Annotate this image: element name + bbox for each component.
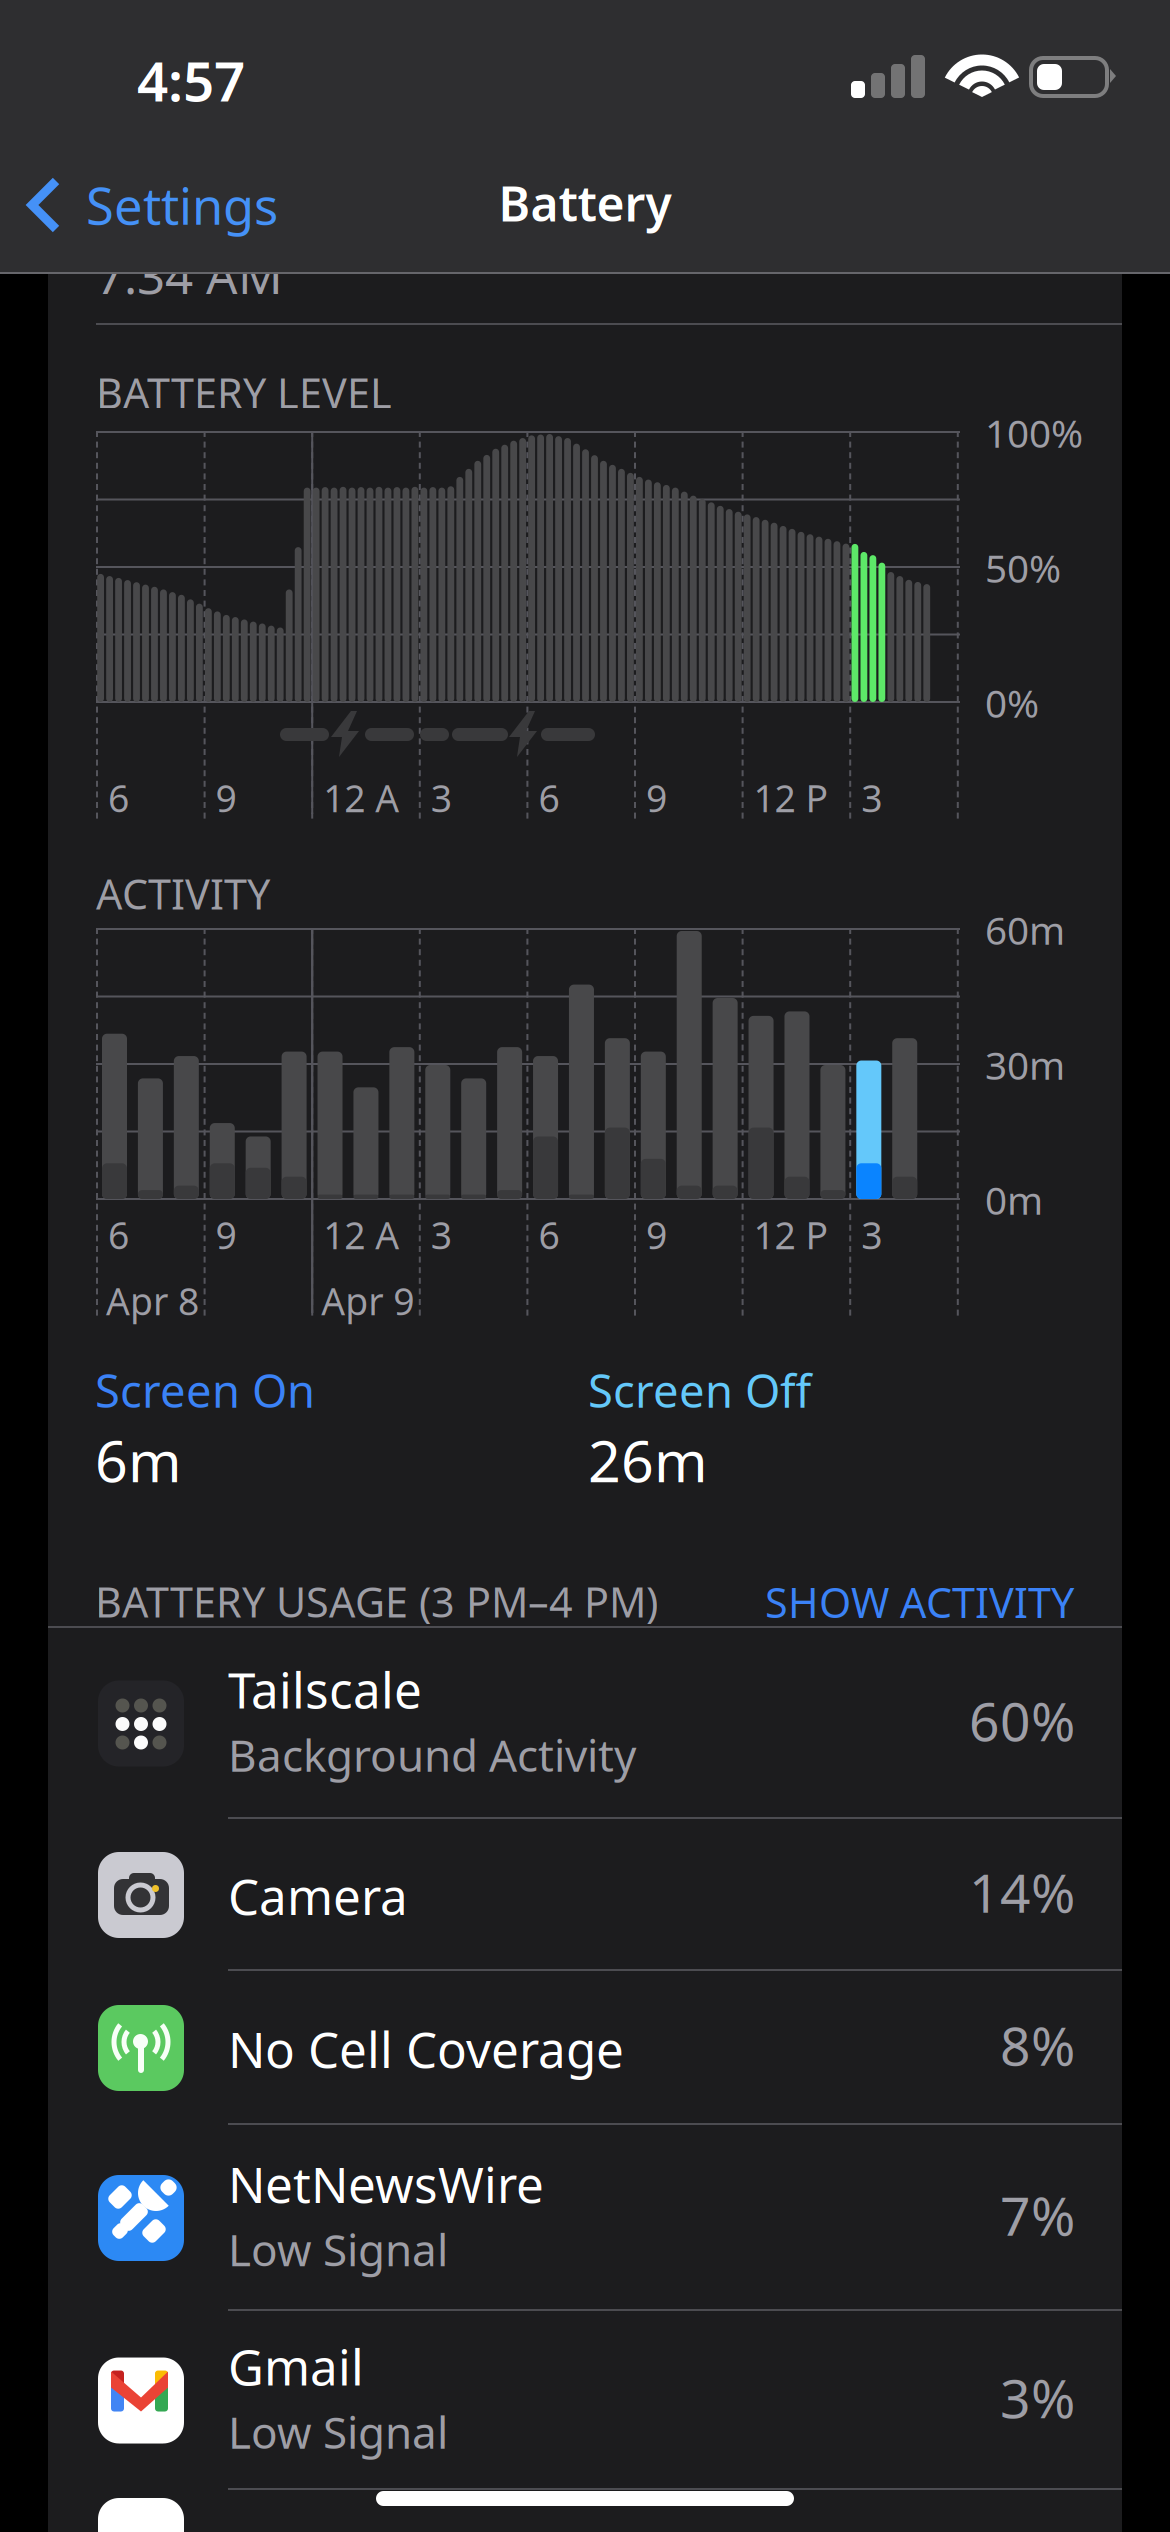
staticText: 8% xyxy=(1000,2010,1075,2080)
staticText: 9 xyxy=(646,773,667,823)
staticText: Screen On xyxy=(95,1360,315,1420)
staticText: Camera xyxy=(228,1863,408,1928)
button[interactable]: No Cell Coverage xyxy=(48,1971,1122,2125)
staticText: 3% xyxy=(1000,2362,1075,2433)
staticText: 9 xyxy=(646,1210,667,1260)
staticText: 3 xyxy=(431,1210,452,1260)
staticText: 9 xyxy=(216,773,237,823)
staticText: 7% xyxy=(1000,2180,1075,2250)
staticText: 0% xyxy=(985,677,1039,728)
button[interactable]: Settings xyxy=(12,158,352,250)
staticText: 12 P xyxy=(754,1210,829,1260)
button[interactable]: Tailscale xyxy=(48,1628,1122,1819)
staticText: 60m xyxy=(985,904,1065,955)
staticText: Apr 8 xyxy=(106,1276,199,1326)
button[interactable]: Screen On xyxy=(95,1360,575,1520)
staticText: ACTIVITY xyxy=(96,866,270,921)
staticText: SHOW ACTIVITY xyxy=(765,1575,1074,1629)
staticText: 4:57 xyxy=(137,44,245,117)
button[interactable]: Screen Off xyxy=(588,1360,1068,1520)
staticText: BATTERY USAGE (3 PM–4 PM) xyxy=(95,1574,658,1629)
staticText: 26m xyxy=(588,1422,708,1498)
staticText: 6 xyxy=(538,1210,559,1260)
staticText: Battery xyxy=(498,171,671,235)
staticText: 3 xyxy=(861,773,882,823)
staticText: 6 xyxy=(108,773,129,823)
staticText: 3 xyxy=(431,773,452,823)
button[interactable]: NetNewsWire xyxy=(48,2125,1122,2311)
staticText: Settings xyxy=(86,171,278,239)
staticText: 9 xyxy=(216,1210,237,1260)
staticText: 12 P xyxy=(754,773,829,823)
staticText: 0m xyxy=(985,1174,1043,1225)
staticText: 100% xyxy=(985,407,1083,458)
staticText: 6 xyxy=(108,1210,129,1260)
staticText: 6 xyxy=(538,773,559,823)
button[interactable]: Gmail xyxy=(48,2311,1122,2490)
staticText: 50% xyxy=(985,542,1061,593)
staticText: Low Signal xyxy=(228,2402,448,2461)
staticText: 12 A xyxy=(323,773,399,823)
button[interactable]: Camera xyxy=(48,1819,1122,1971)
staticText: 7:34 AM xyxy=(96,242,283,307)
staticText: NetNewsWire xyxy=(228,2151,544,2216)
staticText: Tailscale xyxy=(228,1656,422,1722)
staticText: Screen Off xyxy=(588,1360,811,1420)
button[interactable]: SHOW ACTIVITY xyxy=(688,1574,1074,1630)
staticText: Gmail xyxy=(228,2333,364,2399)
staticText: 30m xyxy=(985,1039,1065,1090)
staticText: 12 A xyxy=(323,1210,399,1260)
staticText: 14% xyxy=(969,1857,1075,1927)
staticText: 6m xyxy=(95,1422,182,1498)
staticText: Background Activity xyxy=(228,1725,636,1784)
staticText: 3 xyxy=(861,1210,882,1260)
staticText: BATTERY LEVEL xyxy=(96,365,392,420)
staticText: 60% xyxy=(969,1685,1075,1756)
staticText: No Cell Coverage xyxy=(228,2016,624,2081)
staticText: Low Signal xyxy=(228,2220,448,2278)
staticText: Apr 9 xyxy=(321,1276,414,1326)
